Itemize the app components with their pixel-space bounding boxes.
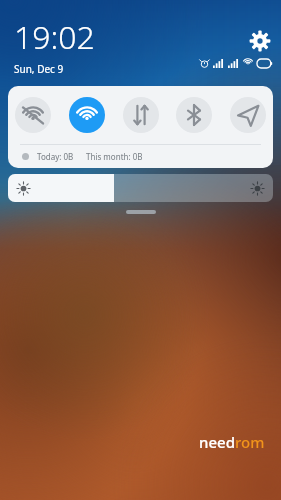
button[interactable]: Settings: [249, 30, 271, 52]
staticText: Sun, Dec 9: [14, 62, 64, 76]
button[interactable]: Mobile data: [123, 97, 159, 133]
staticText: Today: 0B: [37, 151, 74, 162]
staticText: This month: 0B: [86, 151, 143, 162]
staticText: need: [199, 432, 235, 452]
button[interactable]: Wi-Fi: [69, 97, 105, 133]
button[interactable]: Expand quick settings: [126, 210, 156, 214]
button[interactable]: Brightness: [8, 174, 273, 202]
staticText: rom: [235, 432, 265, 452]
button[interactable]: Bluetooth: [176, 97, 212, 133]
staticText: 19:02: [14, 15, 95, 59]
button[interactable]: Today: 0B: [22, 145, 273, 168]
button[interactable]: Wi-Fi hotspot: [15, 97, 51, 133]
button[interactable]: Location: [230, 97, 266, 133]
